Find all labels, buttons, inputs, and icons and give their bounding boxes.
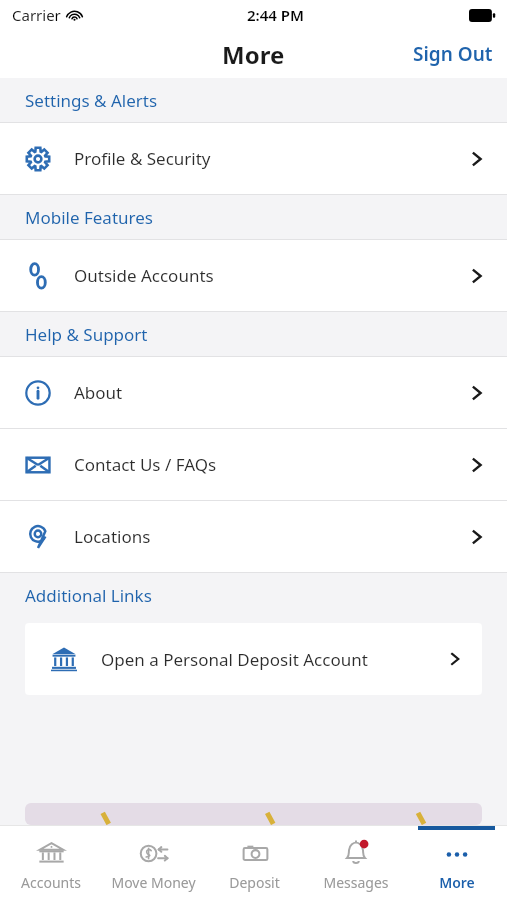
staticText: Additional Links: [25, 584, 152, 607]
staticText: Carrier: [12, 5, 61, 25]
button[interactable]: Deposit: [204, 826, 305, 900]
button[interactable]: Sign Out: [399, 33, 507, 75]
staticText: Sign Out: [413, 41, 493, 67]
staticText: More: [439, 873, 475, 892]
staticText: About: [74, 381, 467, 404]
staticText: Locations: [74, 525, 467, 548]
staticText: Messages: [323, 873, 389, 892]
staticText: Contact Us / FAQs: [74, 453, 467, 476]
button[interactable]: Outside Accounts: [0, 240, 507, 311]
button[interactable]: About: [0, 357, 507, 428]
staticText: Settings & Alerts: [25, 89, 158, 112]
staticText: Outside Accounts: [74, 264, 467, 287]
staticText: Mobile Features: [25, 206, 153, 229]
staticText: Accounts: [21, 873, 81, 892]
staticText: Profile & Security: [74, 147, 467, 170]
staticText: Help & Support: [25, 323, 148, 346]
button[interactable]: Open a Personal Deposit Account: [25, 623, 482, 695]
button[interactable]: Move Money: [102, 826, 204, 900]
button[interactable]: Locations: [0, 501, 507, 572]
button[interactable]: Accounts: [0, 826, 102, 900]
button[interactable]: More: [406, 826, 507, 900]
button[interactable]: Profile & Security: [0, 123, 507, 194]
staticText: Move Money: [111, 873, 196, 892]
staticText: Open a Personal Deposit Account: [101, 648, 446, 671]
button[interactable]: Contact Us / FAQs: [0, 429, 507, 500]
staticText: More: [222, 38, 285, 71]
staticText: Deposit: [229, 873, 280, 892]
button[interactable]: Messages: [305, 826, 406, 900]
staticText: 2:44 PM: [247, 5, 304, 25]
